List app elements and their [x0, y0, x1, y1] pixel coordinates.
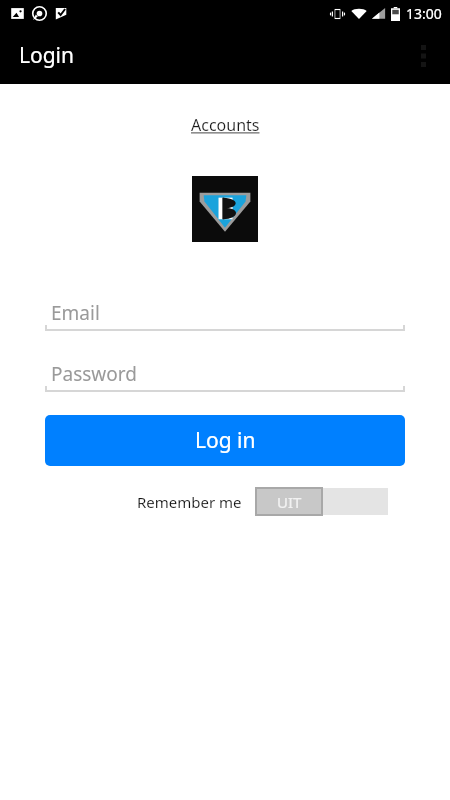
staticText: Password [51, 361, 137, 387]
button[interactable]: More options [403, 36, 443, 76]
staticText: UIT [277, 492, 302, 512]
staticText: Accounts [191, 114, 260, 136]
staticText: Email [51, 300, 100, 326]
button[interactable]: Log in [45, 415, 405, 466]
button[interactable]: Accounts [185, 112, 266, 138]
button[interactable]: Remember me toggle [256, 488, 388, 515]
staticText: Login [19, 41, 75, 70]
staticText: Remember me [137, 492, 242, 512]
button[interactable]: Email [45, 295, 405, 334]
staticText: 13:00 [406, 4, 442, 23]
staticText: Log in [195, 426, 256, 455]
button[interactable]: Password [45, 356, 405, 395]
